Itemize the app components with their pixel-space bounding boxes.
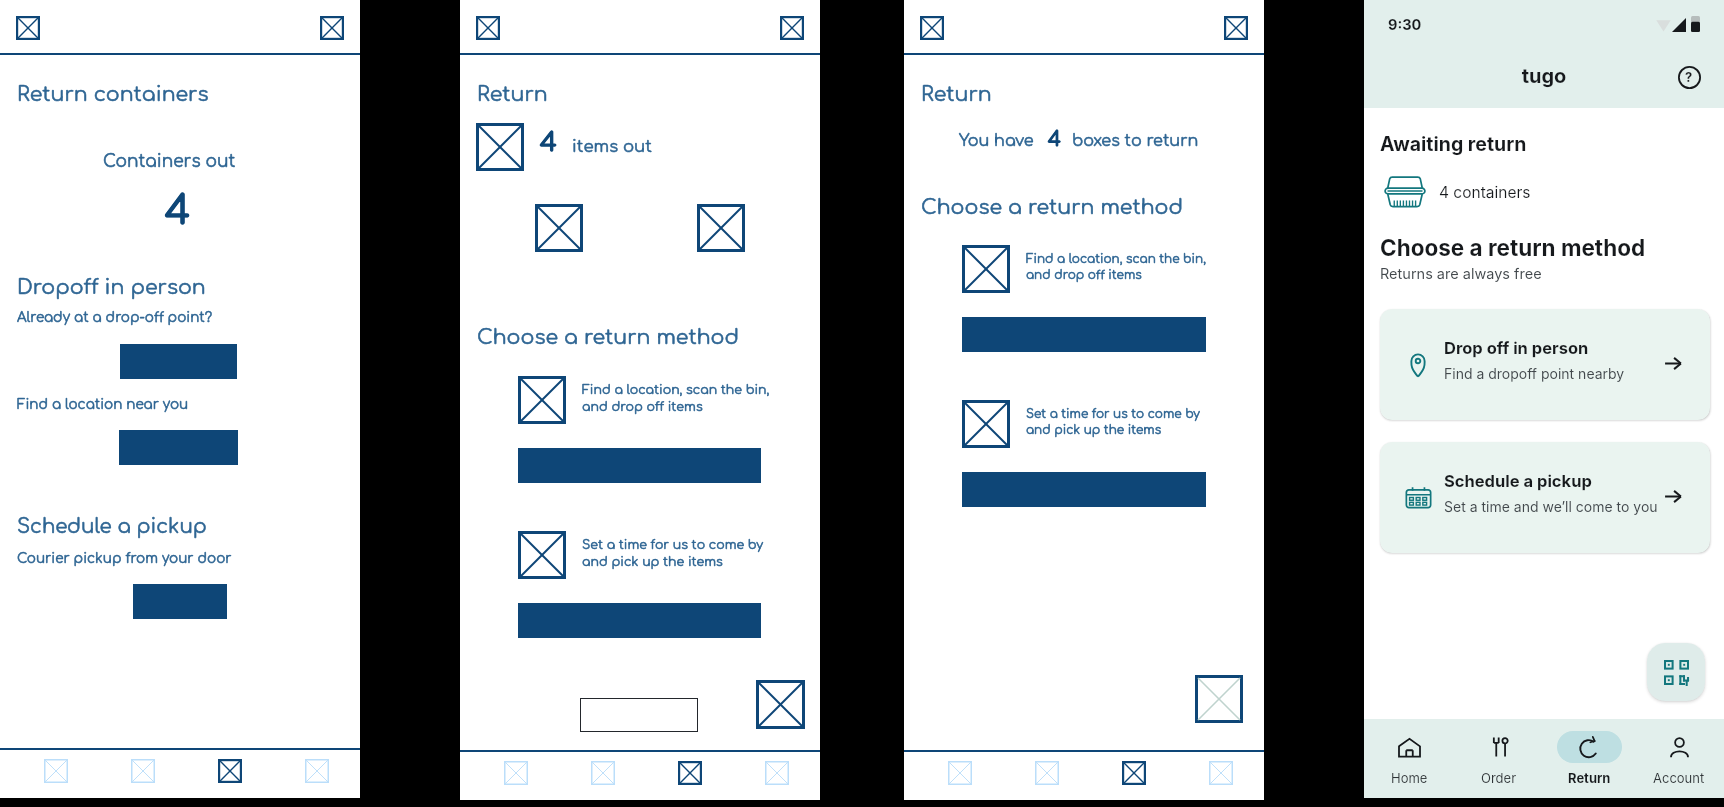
button[interactable]: Ready to scan [580, 698, 698, 732]
button[interactable]: Drop off in person [1380, 309, 1710, 420]
staticText: Order [1481, 770, 1517, 786]
staticText: 9:30 [1388, 16, 1422, 34]
staticText: 4 [165, 190, 191, 233]
staticText: Dropoff in person [17, 276, 206, 299]
staticText: Return [921, 83, 992, 106]
staticText: Dropoff in person [17, 276, 206, 299]
staticText: Choose a return method [921, 196, 1183, 219]
staticText: 4 [1048, 128, 1061, 150]
staticText: Courier pickup from your door [17, 551, 232, 566]
staticText: Set a time and we’ll come to you [1444, 498, 1658, 515]
staticText: ? [1685, 69, 1693, 85]
staticText: items out [572, 137, 652, 155]
button[interactable]: Account [1177, 752, 1264, 800]
staticText: tugo [1364, 64, 1724, 88]
staticText: Find a location, scan the bin, and drop … [582, 383, 770, 414]
staticText: Set a time for us to come by and pick up… [1026, 407, 1200, 436]
button[interactable]: Schedule a pickup [1380, 442, 1710, 553]
staticText: 4 containers [1439, 183, 1531, 202]
button[interactable]: Home [472, 752, 559, 800]
button[interactable]: Menu [476, 16, 500, 40]
staticText: 4 [1048, 128, 1061, 150]
staticText: Return [477, 83, 548, 106]
staticText: Return containers [17, 83, 209, 106]
button[interactable]: QR scanner [756, 680, 805, 729]
staticText: You have [959, 132, 1034, 150]
staticText: Set a time for us to come by and pick up… [1026, 407, 1200, 436]
staticText: Awaiting return [1380, 132, 1527, 156]
staticText: Return containers [17, 83, 209, 106]
button[interactable]: Order [99, 750, 186, 798]
staticText: Find a location, scan the bin, and drop … [582, 383, 770, 414]
button[interactable]: Home [12, 750, 99, 798]
button[interactable]: Return [1090, 752, 1177, 800]
staticText: Already at a drop-off point? [17, 310, 213, 325]
staticText: Find a location, scan the bin, and drop … [1026, 252, 1206, 281]
staticText: Choose a return method [1380, 234, 1646, 261]
staticText: Schedule a pickup [17, 516, 207, 538]
staticText: Schedule a pickup [1444, 471, 1592, 491]
button[interactable]: Return [1544, 719, 1634, 798]
button[interactable]: Menu [16, 16, 40, 40]
staticText: Home [1391, 770, 1428, 786]
button[interactable]: Home [1364, 719, 1454, 798]
staticText: Choose a return method [477, 326, 739, 349]
staticText: Return [477, 83, 548, 106]
button[interactable]: Order [1003, 752, 1090, 800]
staticText: You have [959, 132, 1034, 150]
button[interactable]: Scan QR code [1647, 643, 1705, 701]
staticText: Find a dropoff point nearby [1444, 365, 1625, 382]
staticText: 4 [540, 128, 557, 157]
button[interactable]: Help [780, 16, 804, 40]
button[interactable]: Help [320, 16, 344, 40]
staticText: Containers out [103, 152, 236, 171]
button[interactable]: Help [1674, 62, 1704, 92]
staticText: 4 [165, 190, 191, 233]
staticText: Find a location near you [17, 397, 189, 412]
staticText: Courier pickup from your door [17, 551, 232, 566]
staticText: Find a location, scan the bin, and drop … [1026, 252, 1206, 281]
staticText: Set a time for us to come by and pick up… [582, 538, 764, 569]
staticText: Choose a return method [921, 196, 1183, 219]
staticText: Schedule a pickup [17, 516, 207, 538]
staticText: Return [1568, 770, 1611, 786]
staticText: 4 [540, 128, 557, 157]
staticText: Drop off in person [1444, 338, 1589, 358]
button[interactable]: Home [916, 752, 1003, 800]
button[interactable]: Help [1224, 16, 1248, 40]
button[interactable]: Order [559, 752, 646, 800]
button[interactable]: Order [1454, 719, 1544, 798]
staticText: Account [1653, 770, 1705, 786]
button[interactable]: Account [733, 752, 820, 800]
staticText: Containers out [103, 152, 236, 171]
button[interactable]: QR code scanner [1195, 675, 1243, 723]
staticText: Set a time for us to come by and pick up… [582, 538, 764, 569]
button[interactable]: Account [1634, 719, 1724, 798]
staticText: boxes to return [1072, 132, 1199, 150]
staticText: boxes to return [1072, 132, 1199, 150]
button[interactable]: Account [273, 750, 360, 798]
staticText: items out [572, 137, 652, 155]
staticText: Find a location near you [17, 397, 189, 412]
staticText: Already at a drop-off point? [17, 310, 213, 325]
button[interactable]: Return [646, 752, 733, 800]
staticText: Choose a return method [477, 326, 739, 349]
button[interactable]: Return [186, 750, 273, 798]
button[interactable]: Menu [920, 16, 944, 40]
staticText: Return [921, 83, 992, 106]
staticText: Returns are always free [1380, 265, 1542, 283]
